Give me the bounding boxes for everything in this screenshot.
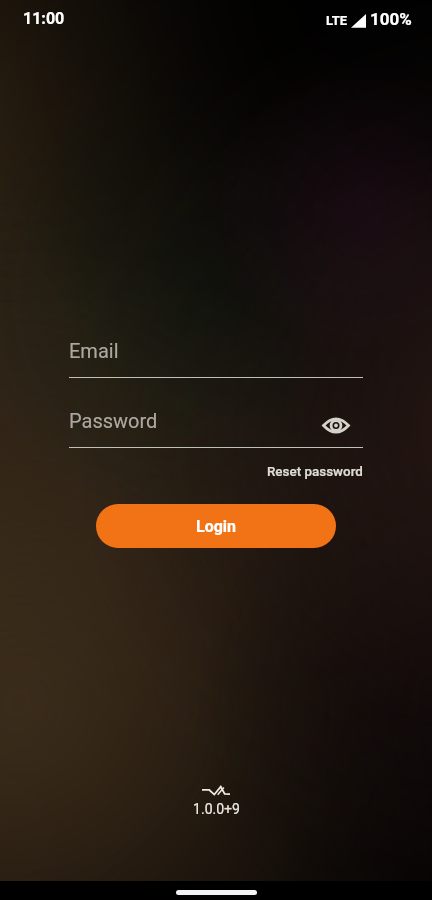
staticText: 1.0.0+9 (193, 801, 240, 817)
staticText: Email (69, 339, 119, 362)
button[interactable]: Login (96, 504, 336, 548)
button[interactable]: Password (69, 409, 363, 447)
button[interactable]: Reset password (267, 464, 363, 480)
staticText: Login (196, 517, 237, 536)
staticText: 11:00 (23, 9, 65, 28)
staticText: Password (69, 409, 158, 432)
button[interactable]: Show password (319, 408, 353, 442)
button[interactable]: Email (69, 339, 363, 377)
staticText: 100% (370, 9, 412, 29)
staticText: LTE (326, 13, 348, 28)
